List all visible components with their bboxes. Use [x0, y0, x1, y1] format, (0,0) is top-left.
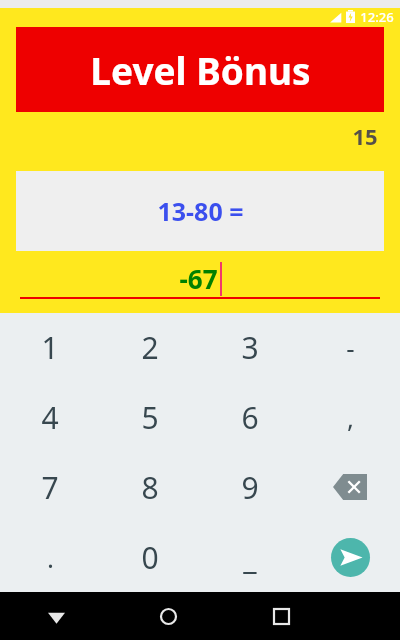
staticText: 3 [241, 327, 259, 368]
button[interactable]: 0 [100, 522, 200, 592]
button[interactable]: 7 [0, 452, 100, 522]
staticText: 12:26 [360, 8, 394, 25]
button[interactable]: 1 [0, 313, 100, 382]
staticText: 13-80 = [157, 194, 244, 228]
button[interactable]: Recent apps [225, 592, 338, 640]
button[interactable]: 13-80 = [16, 171, 384, 251]
staticText: 15 [352, 121, 378, 151]
button[interactable]: - [300, 313, 400, 382]
button[interactable]: 8 [100, 452, 200, 522]
button[interactable]: 4 [0, 382, 100, 452]
button[interactable]: . [0, 522, 100, 592]
button[interactable]: 3 [200, 313, 300, 382]
staticText: 7 [41, 467, 59, 508]
staticText: , [347, 400, 354, 435]
staticText: - [346, 330, 355, 365]
staticText: 2 [141, 327, 159, 368]
button[interactable]: 9 [200, 452, 300, 522]
staticText: 6 [241, 397, 259, 438]
staticText: 4 [41, 397, 59, 438]
staticText: -67 [179, 261, 218, 296]
button[interactable]: Level Bönus [16, 27, 384, 112]
button[interactable]: Send [300, 522, 400, 592]
staticText: Level Bönus [90, 45, 311, 95]
button[interactable]: -67 [0, 251, 400, 313]
staticText: 0 [141, 537, 159, 578]
button[interactable]: Back [0, 592, 112, 640]
staticText: 5 [141, 397, 159, 438]
button[interactable]: _ [200, 522, 300, 592]
staticText: 9 [241, 467, 259, 508]
button[interactable]: Home [112, 592, 225, 640]
button[interactable]: 2 [100, 313, 200, 382]
staticText: 8 [141, 467, 159, 508]
staticText: . [47, 540, 54, 575]
button[interactable]: Backspace [300, 452, 400, 522]
staticText: 1 [41, 327, 59, 368]
button[interactable]: 6 [200, 382, 300, 452]
button[interactable]: 5 [100, 382, 200, 452]
button[interactable]: , [300, 382, 400, 452]
staticText: _ [243, 537, 257, 578]
